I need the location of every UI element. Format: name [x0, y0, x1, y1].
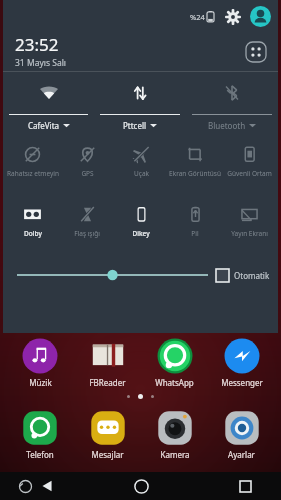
staticText: Otomatik [234, 270, 270, 281]
staticText: Flaş ışığı [74, 229, 100, 238]
button[interactable]: User [250, 6, 271, 27]
staticText: Dikey [132, 229, 150, 238]
button[interactable]: Yayın Ekranı [222, 195, 276, 255]
staticText: Güvenli Ortam [227, 169, 272, 178]
staticText: GPS [81, 169, 94, 178]
staticText: 31 Mayıs Salı [15, 57, 67, 69]
staticText: %24 [190, 12, 205, 22]
button[interactable]: Back [37, 476, 57, 496]
button[interactable]: Home [130, 475, 152, 497]
staticText: Uçak [134, 169, 149, 178]
button[interactable]: Messenger [208, 337, 275, 388]
button[interactable]: Settings [223, 7, 243, 27]
button[interactable]: WhatsApp [141, 337, 208, 388]
button[interactable]: Mesajlar [74, 409, 141, 460]
staticText: Telefon [26, 449, 54, 460]
staticText: Ekran Görüntüsü [169, 169, 221, 178]
button[interactable]: Kamera [141, 409, 208, 460]
staticText: Dolby [24, 229, 42, 238]
staticText: Mesajlar [91, 449, 124, 460]
button[interactable]: Bluetooth [186, 72, 278, 135]
staticText: 23:52 [15, 33, 59, 56]
button[interactable]: Dikey [114, 195, 168, 255]
button[interactable]: Otomatik [216, 269, 270, 282]
button[interactable]: Müzik [6, 337, 74, 388]
staticText: Ayarlar [228, 449, 255, 460]
staticText: Messenger [221, 377, 263, 388]
button[interactable]: GPS [60, 135, 114, 195]
staticText: WhatsApp [155, 377, 194, 388]
button[interactable]: FBReader [74, 337, 141, 388]
button[interactable]: Brightness [17, 263, 208, 287]
button[interactable]: Dolby [5, 195, 60, 255]
button[interactable]: Rotate [16, 477, 35, 496]
staticText: Pttcell [123, 120, 147, 131]
button[interactable]: All settings [243, 39, 268, 64]
button[interactable]: Uçak [114, 135, 168, 195]
staticText: Rahatsız etmeyin [7, 169, 59, 178]
staticText: FBReader [89, 377, 126, 388]
button[interactable]: CafeVita [3, 72, 94, 135]
button[interactable]: Telefon [6, 409, 74, 460]
button[interactable]: Güvenli Ortam [222, 135, 276, 195]
staticText: Pil [191, 229, 199, 238]
button[interactable]: Rahatsız etmeyin [5, 135, 60, 195]
button[interactable]: Ekran Görüntüsü [168, 135, 222, 195]
button[interactable]: Recents [235, 476, 255, 496]
button[interactable]: Flaş ışığı [60, 195, 114, 255]
staticText: CafeVita [28, 120, 60, 131]
staticText: Kamera [160, 449, 190, 460]
button[interactable]: Ayarlar [208, 409, 275, 460]
staticText: Müzik [29, 377, 52, 388]
button[interactable]: Pttcell [94, 72, 186, 135]
staticText: Yayın Ekranı [231, 229, 268, 238]
button[interactable]: Pil [168, 195, 222, 255]
staticText: Bluetooth [208, 120, 246, 131]
